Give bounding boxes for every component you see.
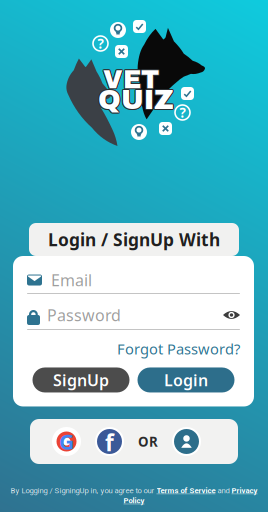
staticText: QUIZ <box>98 86 174 116</box>
button[interactable]: Terms of Service <box>156 486 215 495</box>
button[interactable]: SignUp <box>32 367 129 392</box>
button[interactable]: Continue as guest <box>172 427 201 456</box>
button[interactable]: Forgot Password? <box>117 339 240 358</box>
staticText: and <box>215 486 231 495</box>
staticText: QUIZ <box>97 86 173 115</box>
button[interactable]: Continue with Facebook <box>95 426 124 456</box>
button[interactable]: Login <box>137 367 234 392</box>
staticText: OR <box>138 433 158 450</box>
staticText: By Logging / SigningUp in, you agree to … <box>10 486 156 495</box>
button[interactable]: Privacy <box>231 486 257 495</box>
button[interactable]: Policy <box>123 496 144 505</box>
staticText: QUIZ <box>97 85 173 115</box>
staticText: Forgot Password? <box>117 339 240 358</box>
staticText: QUIZ <box>97 84 173 114</box>
staticText: G <box>59 427 74 456</box>
staticText: VET <box>104 65 160 93</box>
staticText: VET <box>103 67 159 95</box>
button[interactable]: Show password <box>223 310 240 319</box>
staticText: QUIZ <box>99 85 175 115</box>
staticText: QUIZ <box>99 84 175 114</box>
staticText: Terms of Service <box>156 486 215 495</box>
button[interactable]: Continue with Google <box>52 427 81 456</box>
staticText: VET <box>103 65 159 92</box>
staticText: Login <box>164 369 208 391</box>
staticText: f <box>105 427 114 457</box>
staticText: QUIZ <box>98 84 174 114</box>
staticText: VET <box>102 67 158 94</box>
staticText: VET <box>104 66 160 94</box>
staticText: VET <box>103 66 159 94</box>
staticText: VET <box>102 66 158 94</box>
staticText: Email <box>51 269 92 291</box>
staticText: ? <box>179 104 185 121</box>
staticText: Password <box>47 304 121 326</box>
staticText: Login / SignUp With <box>48 228 220 251</box>
staticText: ? <box>97 35 103 52</box>
staticText: VET <box>104 67 160 94</box>
staticText: VET <box>102 65 158 93</box>
staticText: QUIZ <box>99 86 175 115</box>
staticText: Policy <box>123 496 144 505</box>
staticText: SignUp <box>53 369 109 391</box>
staticText: QUIZ <box>98 85 174 115</box>
staticText: Privacy <box>231 486 257 495</box>
